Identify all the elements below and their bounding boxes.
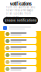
button[interactable] — [4, 52, 36, 58]
staticText: Notifications — [9, 2, 31, 6]
button[interactable] — [4, 66, 36, 72]
button[interactable]: Enable notifications — [3, 17, 38, 24]
button[interactable] — [4, 38, 36, 44]
staticText: Turn on alerts so you never miss a messa… — [5, 5, 35, 18]
button[interactable] — [4, 45, 36, 51]
staticText: Enable notifications — [5, 19, 36, 22]
button[interactable]: App icon — [3, 26, 7, 30]
button[interactable] — [4, 31, 36, 37]
button[interactable] — [4, 59, 36, 65]
